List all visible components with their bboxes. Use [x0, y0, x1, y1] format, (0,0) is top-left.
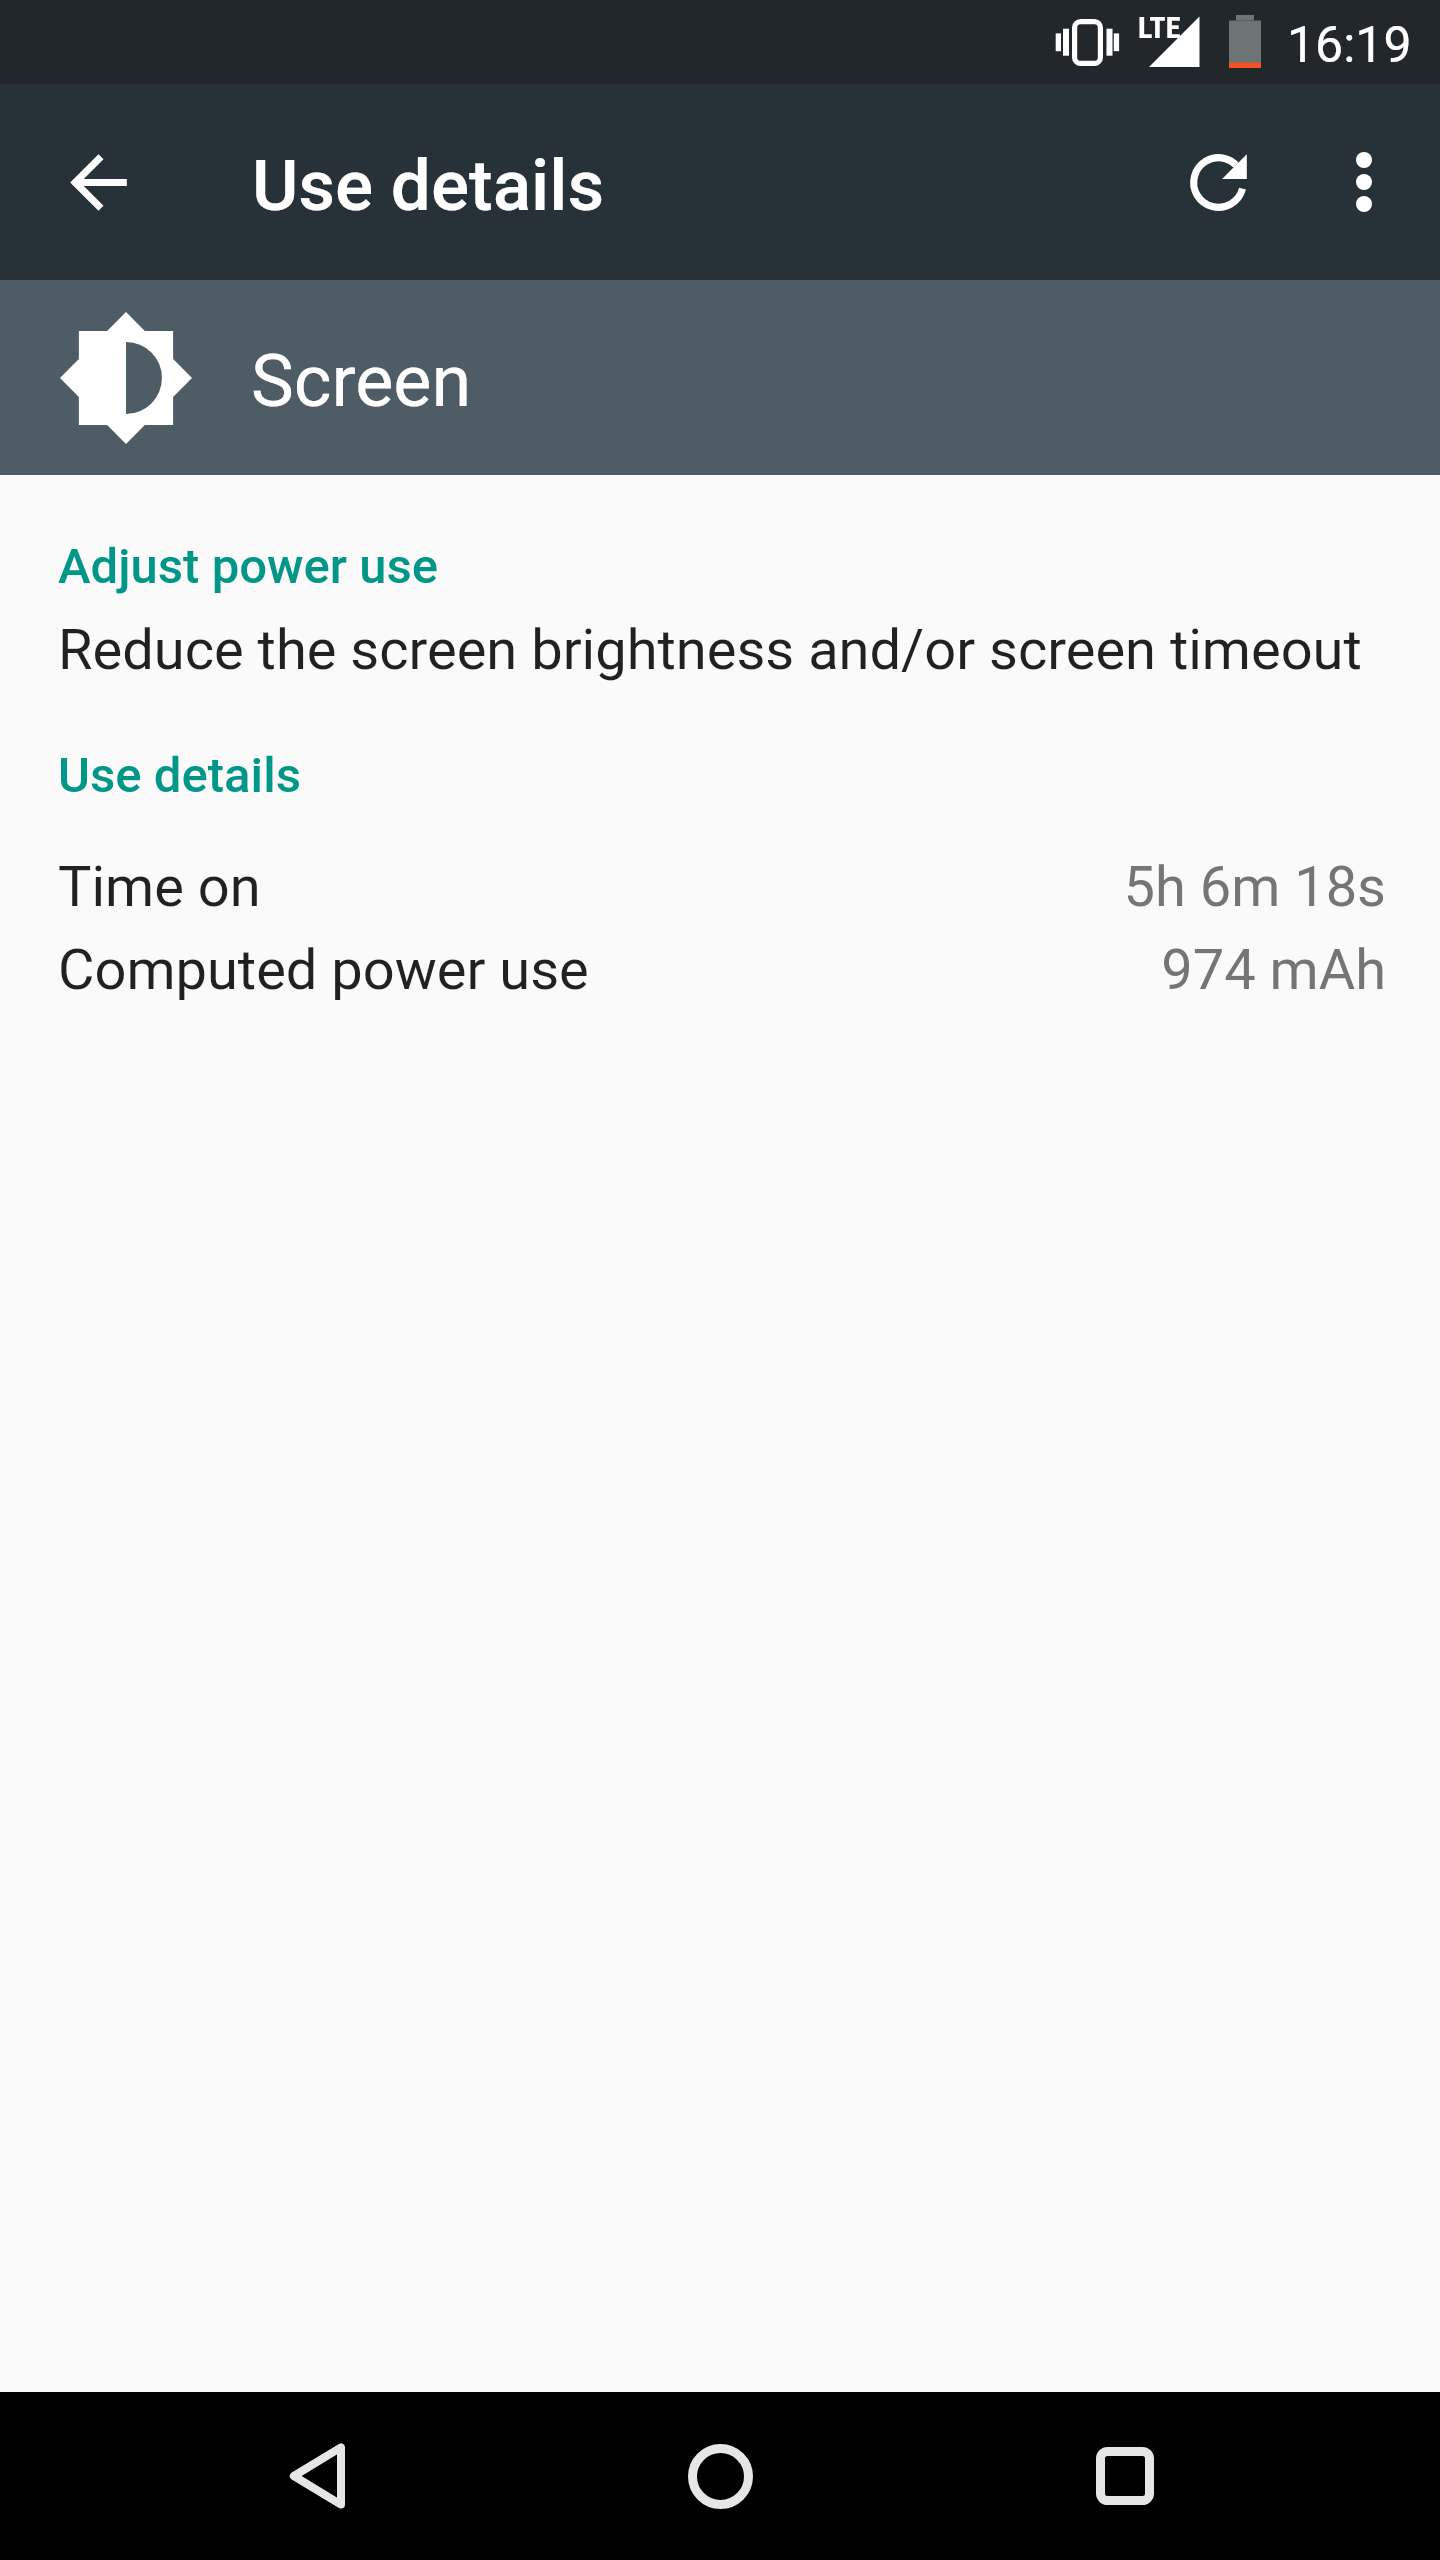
staticText: Time on: [58, 854, 261, 920]
button[interactable]: Screen: [0, 280, 1440, 475]
staticText: 974 mAh: [1161, 937, 1386, 1003]
button[interactable]: Navigate up: [26, 110, 170, 254]
staticText: Computed power use: [58, 937, 589, 1003]
button[interactable]: More options: [1292, 110, 1436, 254]
staticText: Use details: [58, 747, 301, 804]
button[interactable]: Time on: [0, 854, 1440, 920]
button[interactable]: Computed power use: [0, 937, 1440, 1003]
staticText: 5h 6m 18s: [1123, 854, 1386, 920]
button[interactable]: Back: [244, 2392, 388, 2560]
staticText: Screen: [251, 339, 472, 423]
button[interactable]: Refresh: [1146, 110, 1290, 254]
staticText: Reduce the screen brightness and/or scre…: [58, 617, 1362, 683]
button[interactable]: Home: [648, 2392, 792, 2560]
staticText: LTE: [1138, 10, 1181, 45]
button[interactable]: Recent apps: [1053, 2392, 1197, 2560]
staticText: Adjust power use: [58, 538, 439, 595]
staticText: Use details: [252, 144, 605, 227]
staticText: 16:19: [1287, 16, 1412, 75]
